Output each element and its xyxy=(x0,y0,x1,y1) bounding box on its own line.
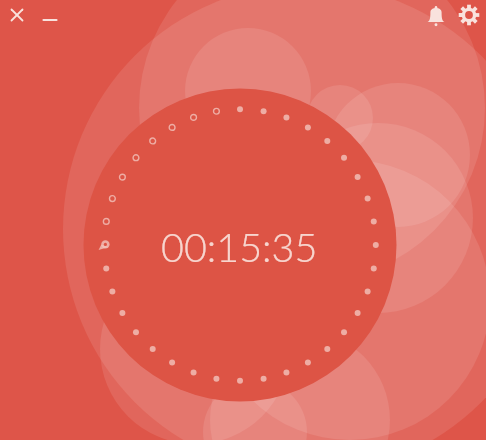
button[interactable]: Settings xyxy=(455,1,483,29)
staticText: 00:15:35 xyxy=(161,223,318,270)
button[interactable]: Close xyxy=(3,1,31,29)
button[interactable]: Minimize xyxy=(36,6,64,34)
button[interactable]: Notifications xyxy=(422,1,450,29)
